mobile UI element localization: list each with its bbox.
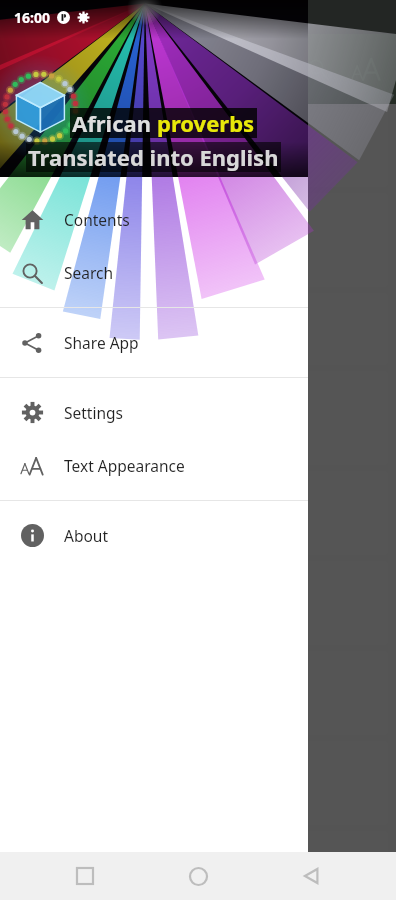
button[interactable]: Back (283, 852, 339, 900)
button[interactable]: Integrity and honesty (8, 741, 388, 825)
staticText: Proverbs about the wisdom of elders (22, 211, 211, 269)
button: African (0, 0, 308, 852)
button[interactable]: Search (294, 45, 342, 93)
staticText: proverbs (157, 108, 255, 138)
button[interactable]: Friendship - relationships (8, 471, 388, 555)
button[interactable]: Home (170, 852, 226, 900)
staticText: African (72, 108, 157, 138)
staticText: 16:00 (14, 8, 50, 27)
button[interactable]: Wisdom - King Solomon (8, 831, 388, 897)
staticText: About (64, 525, 108, 546)
button[interactable] (8, 107, 388, 187)
staticText: Wisdom - King Solomon (22, 835, 165, 893)
button[interactable]: Share App (0, 316, 308, 369)
button[interactable]: Recents (57, 852, 113, 900)
staticText: AFRICAN PROVERBS (22, 389, 127, 447)
button[interactable]: Respect for elders (8, 651, 388, 735)
staticText: Translated into English (28, 142, 279, 172)
button[interactable]: Search (0, 246, 308, 299)
button[interactable]: Text Appearance (0, 439, 308, 492)
staticText: Settings (64, 402, 123, 423)
staticText: Text Appearance (64, 455, 185, 476)
button[interactable]: Text Appearance (342, 45, 390, 93)
button[interactable]: AFRICAN PROVERBS (8, 371, 388, 465)
staticText: Contents (64, 209, 130, 230)
button[interactable]: Contents (0, 193, 308, 246)
button[interactable]: Settings (0, 386, 308, 439)
staticText: Introduction (22, 315, 146, 344)
button[interactable] (0, 0, 396, 852)
staticText: Share App (64, 332, 139, 353)
staticText: Search (64, 262, 114, 283)
button[interactable]: Introduction (8, 293, 388, 365)
button[interactable]: The value of patience (8, 561, 388, 645)
button[interactable]: Proverbs about the wisdom of elders (8, 193, 388, 287)
staticText: Friendship - relationships (22, 484, 150, 542)
button[interactable]: About (0, 509, 308, 562)
